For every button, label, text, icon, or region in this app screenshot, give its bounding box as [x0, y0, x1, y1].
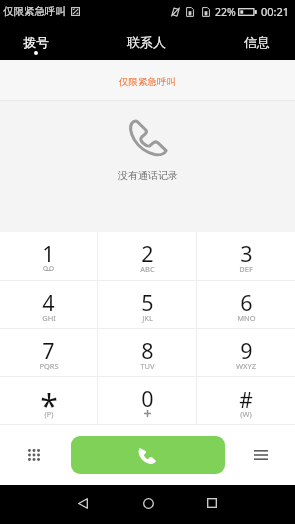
button[interactable]: 7 [0, 329, 97, 376]
staticText: # [239, 386, 253, 415]
button[interactable]: Home [132, 487, 164, 519]
staticText: 00:21 [261, 4, 290, 19]
staticText: 仅限紧急呼叫 [119, 76, 176, 88]
staticText: 1 [42, 239, 55, 268]
staticText: 6 [240, 288, 253, 317]
button[interactable]: 6 [197, 281, 295, 328]
staticText: 没有通话记录 [118, 169, 178, 182]
button[interactable]: 信息 [238, 22, 276, 60]
staticText: 9 [240, 336, 253, 365]
staticText: 5 [141, 288, 154, 317]
button[interactable]: 联系人 [121, 22, 172, 60]
button[interactable]: Back [67, 487, 99, 519]
button[interactable]: Call [71, 436, 225, 474]
button[interactable]: 1 [0, 232, 97, 280]
staticText: 4 [42, 288, 55, 317]
staticText: PQRS [39, 361, 59, 371]
staticText: * [40, 384, 58, 428]
staticText: MNO [237, 313, 256, 323]
staticText: 7 [42, 336, 55, 365]
button[interactable]: 8 [98, 329, 196, 376]
button[interactable]: # [197, 377, 295, 424]
button[interactable]: * [0, 377, 97, 424]
staticText: DEF [239, 264, 253, 274]
staticText: 仅限紧急呼叫 [3, 5, 66, 18]
button[interactable]: 2 [98, 232, 196, 280]
button[interactable]: 4 [0, 281, 97, 328]
button[interactable]: Menu [241, 435, 281, 475]
staticText: (P) [44, 409, 54, 419]
button[interactable]: Recents [196, 487, 228, 519]
staticText: GHI [42, 313, 56, 323]
staticText: 拨号 [23, 34, 49, 50]
staticText: 8 [141, 336, 154, 365]
button[interactable]: 5 [98, 281, 196, 328]
button[interactable]: 9 [197, 329, 295, 376]
staticText: TUV [140, 361, 155, 371]
staticText: WXYZ [236, 361, 256, 371]
staticText: JKL [142, 313, 153, 323]
staticText: (W) [240, 409, 252, 419]
staticText: 信息 [244, 34, 270, 50]
staticText: 22% [215, 5, 236, 19]
button[interactable]: 拨号 [17, 22, 55, 60]
staticText: 联系人 [127, 34, 166, 50]
staticText: 0 [141, 384, 154, 413]
staticText: 2 [141, 239, 154, 268]
button[interactable]: Keypad [14, 435, 54, 475]
staticText: 3 [240, 239, 253, 268]
staticText: ABC [140, 264, 155, 274]
button[interactable]: 3 [197, 232, 295, 280]
button[interactable]: 0 [98, 377, 196, 424]
